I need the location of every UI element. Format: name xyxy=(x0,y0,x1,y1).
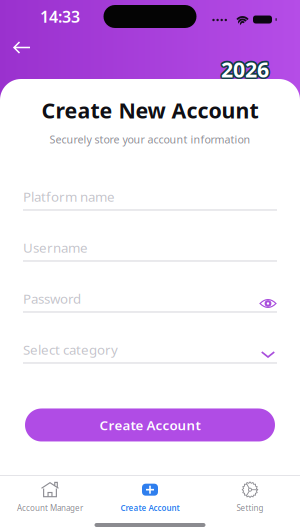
staticText: 2026 xyxy=(221,53,269,82)
staticText: Create Account xyxy=(99,416,200,434)
button[interactable]: Account Manager xyxy=(0,481,100,515)
staticText: Setting xyxy=(236,503,263,513)
staticText: 2026 xyxy=(220,54,268,82)
button[interactable]: Create Account xyxy=(25,408,275,441)
staticText: Platform name xyxy=(23,188,115,205)
staticText: 2026 xyxy=(222,54,270,82)
button[interactable]: Back xyxy=(5,34,39,61)
staticText: 2026 xyxy=(221,57,269,85)
staticText: Password xyxy=(23,290,81,307)
staticText: 2026 xyxy=(223,55,271,83)
button[interactable]: Setting xyxy=(200,481,300,515)
staticText: Create New Account xyxy=(41,96,258,124)
staticText: Securely store your account information xyxy=(49,132,250,146)
staticText: Username xyxy=(23,239,88,256)
staticText: Account Manager xyxy=(17,503,83,513)
staticText: 2026 xyxy=(221,55,269,83)
staticText: Select category xyxy=(23,341,118,358)
staticText: Create Account xyxy=(120,503,179,513)
button[interactable]: Select category xyxy=(259,346,277,362)
staticText: 2026 xyxy=(222,56,270,84)
button[interactable]: Show password xyxy=(259,295,277,311)
staticText: 14:33 xyxy=(40,6,80,27)
button[interactable]: Create Account xyxy=(100,481,200,515)
staticText: 2026 xyxy=(219,55,267,83)
staticText: 2026 xyxy=(220,56,268,84)
